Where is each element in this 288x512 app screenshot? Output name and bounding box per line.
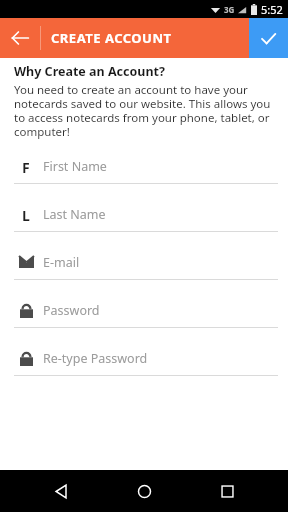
button[interactable]: Home xyxy=(122,470,166,512)
button[interactable]: F xyxy=(0,149,288,197)
staticText: Last Name xyxy=(43,206,106,223)
button[interactable]: Back xyxy=(0,18,40,58)
staticText: 5:52 xyxy=(261,2,283,17)
button[interactable]: Re-type Password xyxy=(0,341,288,389)
staticText: Why Create an Account? xyxy=(14,63,165,80)
button[interactable]: Recent apps xyxy=(205,470,249,512)
staticText: L xyxy=(22,206,30,222)
staticText: F xyxy=(22,158,30,174)
button[interactable]: Back xyxy=(39,470,83,512)
staticText: Password xyxy=(43,302,100,319)
staticText: Re-type Password xyxy=(43,350,148,367)
button[interactable]: L xyxy=(0,197,288,245)
button[interactable]: Confirm xyxy=(249,18,288,58)
staticText: You need to create an account to have yo… xyxy=(14,82,280,139)
button[interactable]: Password xyxy=(0,293,288,341)
button[interactable]: E-mail xyxy=(0,245,288,293)
staticText: CREATE ACCOUNT xyxy=(51,29,172,47)
staticText: First Name xyxy=(43,158,107,175)
staticText: E-mail xyxy=(43,254,80,271)
staticText: 3G xyxy=(224,4,235,15)
